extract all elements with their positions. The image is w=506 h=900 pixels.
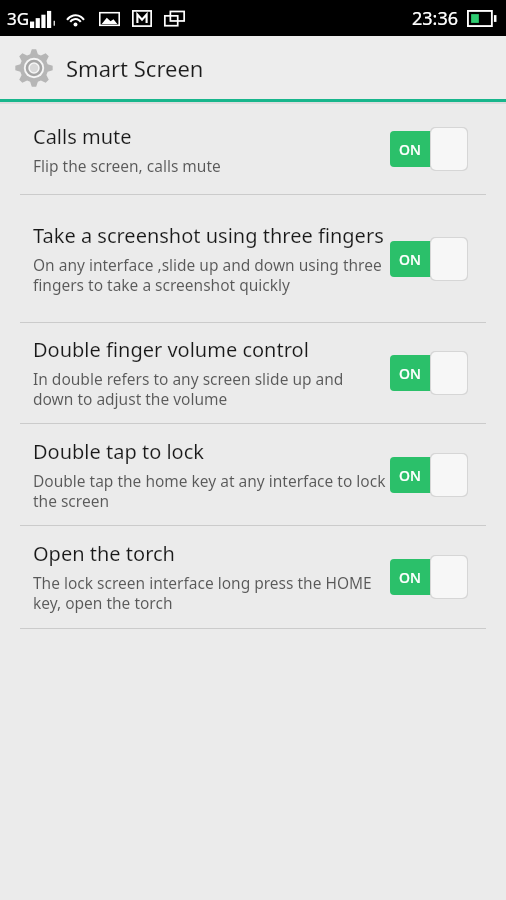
button[interactable]: Double finger volume control xyxy=(0,323,506,423)
staticText: 3G xyxy=(7,7,30,30)
button[interactable]: Take a screenshot using three fingers xyxy=(0,195,506,322)
staticText: Take a screenshot using three fingers xyxy=(33,222,384,249)
staticText: Double finger volume control xyxy=(33,336,309,363)
button[interactable]: Open the torch xyxy=(0,526,506,628)
button[interactable]: Toggle Calls mute xyxy=(390,127,468,171)
staticText: ON xyxy=(399,364,421,383)
staticText: Flip the screen, calls mute xyxy=(33,155,221,176)
button[interactable]: Toggle Double tap to lock xyxy=(390,453,468,497)
staticText: ON xyxy=(399,568,421,587)
button[interactable]: Toggle Double finger volume control xyxy=(390,351,468,395)
staticText: Double tap the home key at any interface… xyxy=(33,470,386,512)
staticText: The lock screen interface long press the… xyxy=(33,572,386,614)
staticText: Double tap to lock xyxy=(33,438,204,465)
button[interactable]: Double tap to lock xyxy=(0,424,506,525)
staticText: In double refers to any screen slide up … xyxy=(33,368,386,410)
button[interactable]: Toggle Open the torch xyxy=(390,555,468,599)
staticText: ON xyxy=(399,250,421,269)
button[interactable]: Calls mute xyxy=(0,104,506,194)
staticText: Smart Screen xyxy=(66,53,204,83)
staticText: ON xyxy=(399,140,421,159)
staticText: Open the torch xyxy=(33,540,175,567)
staticText: 23:36 xyxy=(412,6,459,31)
staticText: Calls mute xyxy=(33,123,132,150)
button[interactable]: Toggle Take a screenshot using three fin… xyxy=(390,237,468,281)
staticText: On any interface ,slide up and down usin… xyxy=(33,254,386,296)
staticText: ON xyxy=(399,466,421,485)
